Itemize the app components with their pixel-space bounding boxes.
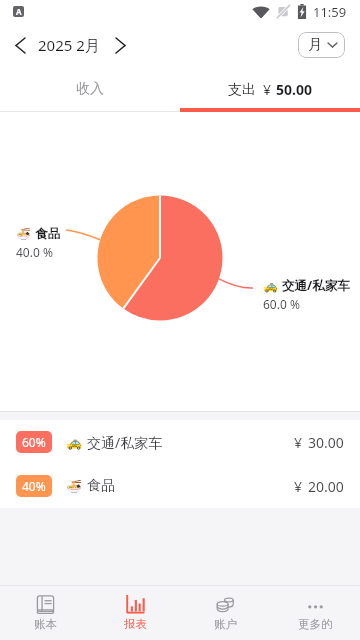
button[interactable]: 月 [298,32,345,58]
staticText: 账本 [34,617,57,631]
staticText: 食品 [87,477,115,495]
staticText: 交通/私家车 [282,277,350,294]
staticText: 食品 [35,226,60,242]
button[interactable]: 40% [0,464,360,508]
staticText: 50.00 [276,80,312,99]
staticText: 40.0 % [16,244,53,260]
button[interactable]: 支出 [180,66,360,112]
staticText: ¥ [263,80,272,99]
staticText: 支出 [228,81,256,99]
staticText: 2025 2月 [38,35,100,55]
button[interactable]: Previous month [9,34,31,56]
staticText: 60.0 % [263,296,300,312]
button[interactable]: 更多的 [270,586,360,640]
staticText: 20.00 [308,477,344,496]
staticText: 交通/私家车 [87,433,163,452]
staticText: 🚕 [263,279,278,293]
staticText: ¥ [294,477,303,496]
staticText: 60% [22,434,46,450]
staticText: 🍜 [16,227,31,241]
staticText: A [16,6,22,17]
button[interactable]: 账本 [0,586,90,640]
button[interactable]: 60% [0,420,360,464]
staticText: 月 [308,36,322,54]
staticText: 收入 [76,80,104,98]
button[interactable]: Next month [109,34,131,56]
staticText: 🚕 [66,435,83,450]
staticText: 账户 [214,617,237,631]
staticText: 🍜 [66,479,83,494]
staticText: ¥ [294,433,303,452]
staticText: 11:59 [313,3,347,21]
staticText: 报表 [124,617,147,631]
staticText: 更多的 [298,617,333,631]
staticText: 40% [22,478,46,494]
button[interactable]: 收入 [0,66,180,112]
button[interactable]: 报表 [90,586,180,640]
staticText: 30.00 [308,433,344,452]
button[interactable]: 账户 [180,586,270,640]
